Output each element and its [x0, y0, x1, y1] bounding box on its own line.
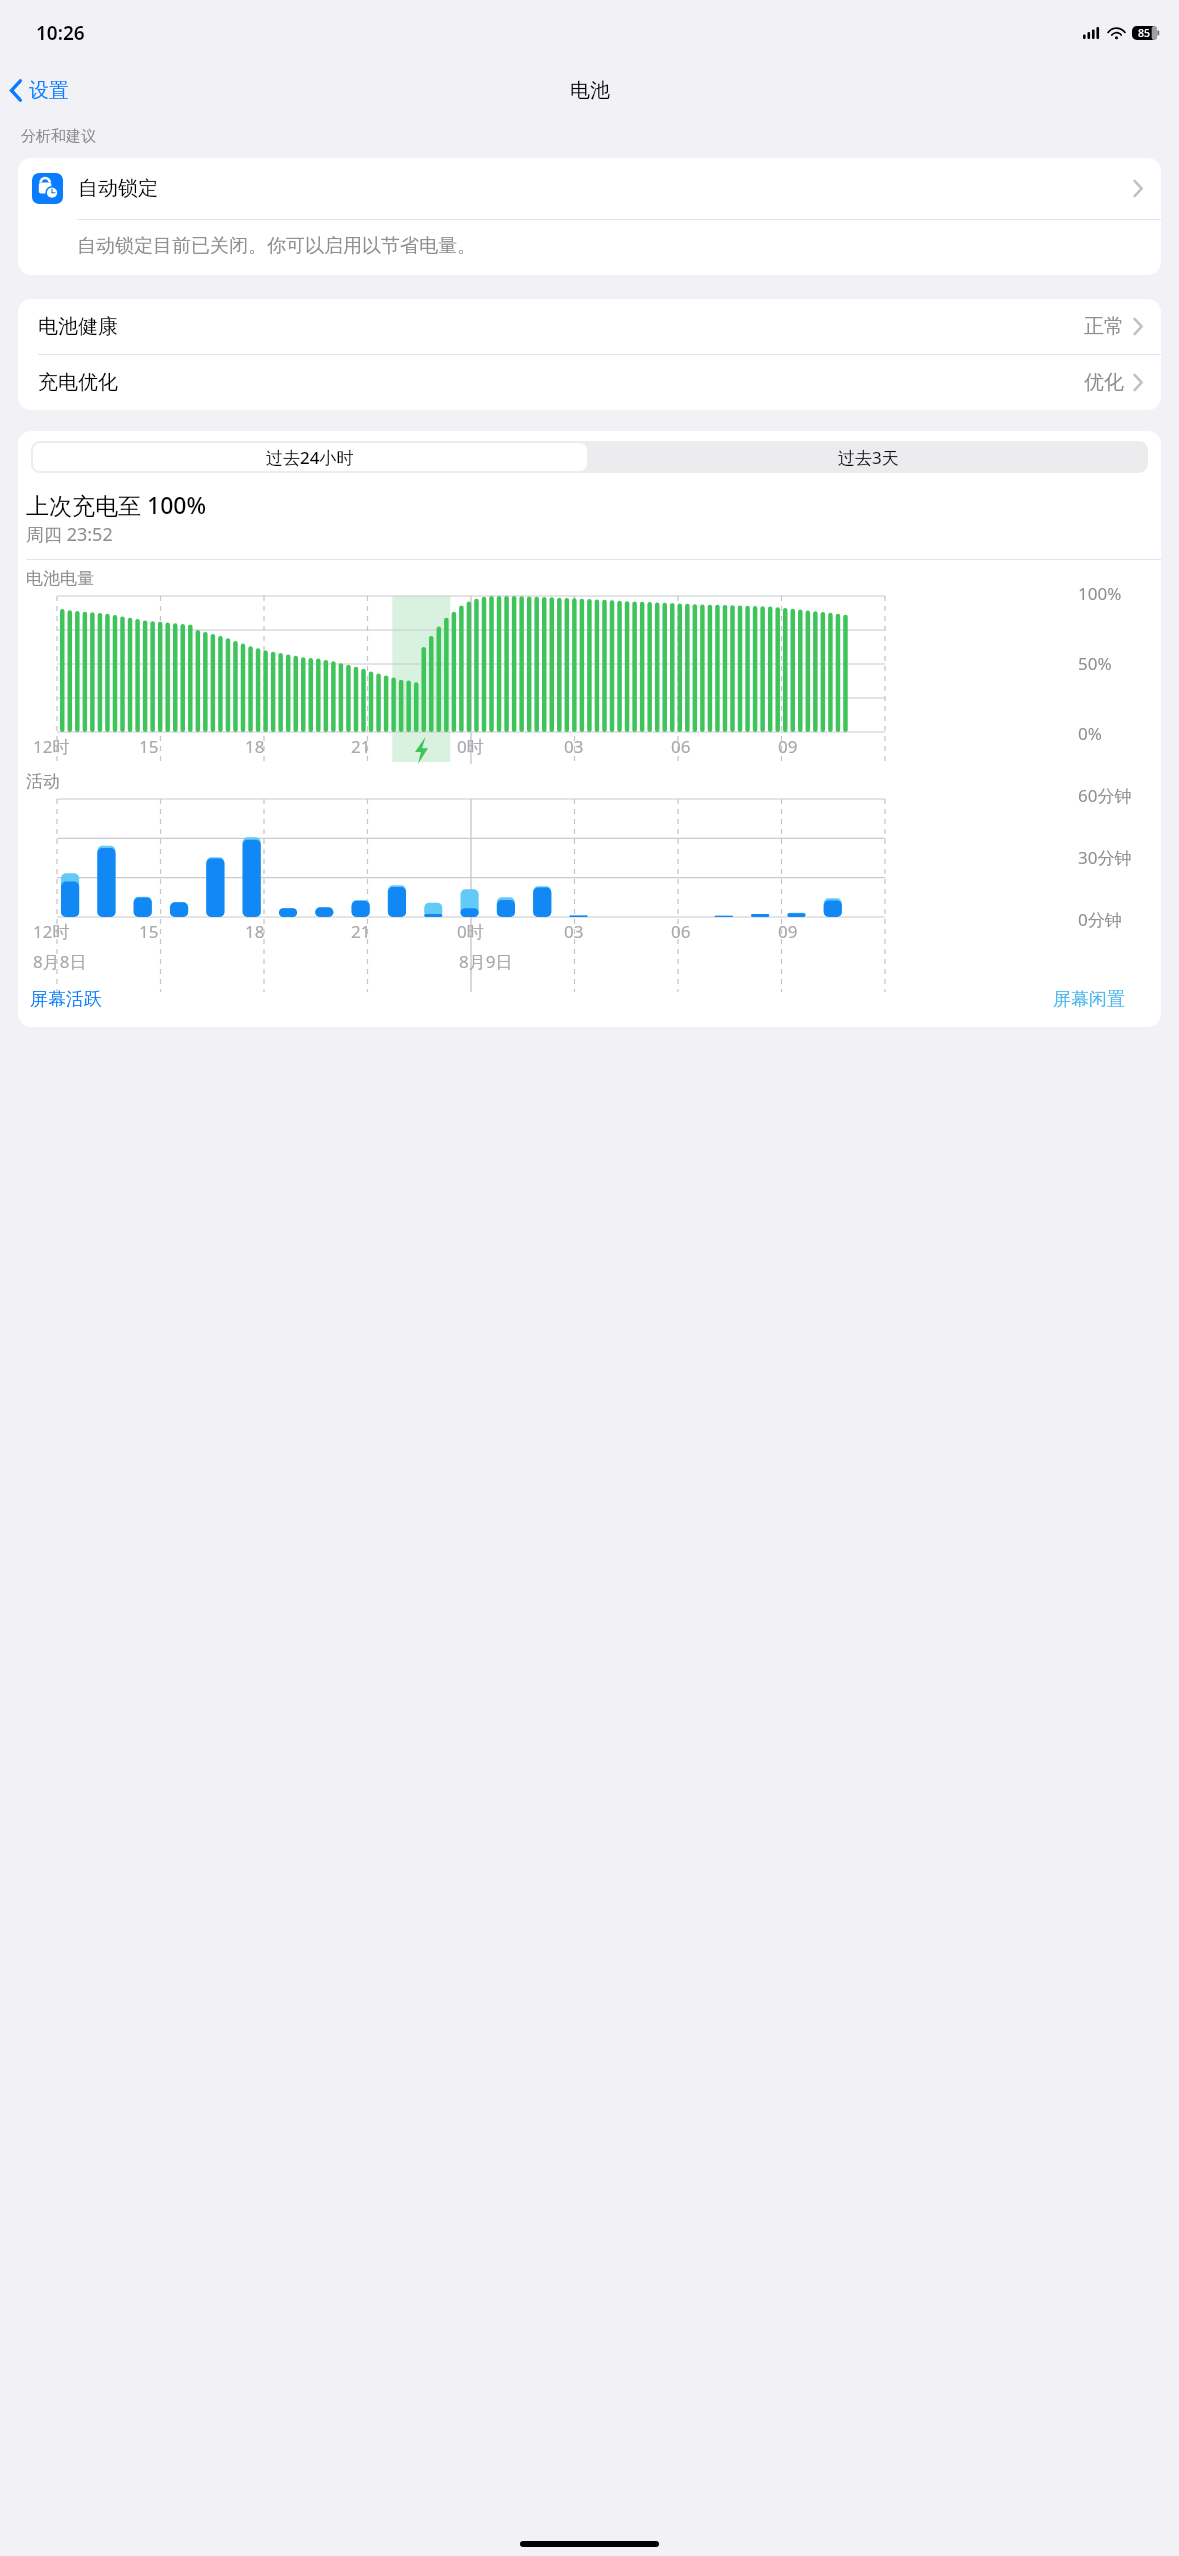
staticText: 正常 — [1084, 314, 1124, 339]
staticText: 0% — [1078, 722, 1102, 745]
staticText: 21 — [351, 920, 371, 943]
staticText: 充电优化 — [38, 370, 118, 395]
staticText: 21 — [351, 735, 371, 758]
staticText: 03 — [564, 735, 584, 758]
staticText: 06 — [671, 920, 691, 943]
staticText: 03 — [564, 920, 584, 943]
staticText: 电池电量 — [26, 568, 94, 589]
staticText: 屏幕活跃 — [30, 988, 102, 1011]
staticText: 18 — [245, 920, 265, 943]
button[interactable]: 设置 — [0, 72, 81, 109]
staticText: 8月8日 — [33, 950, 87, 973]
staticText: 过去3天 — [838, 446, 899, 469]
button[interactable]: 自动锁定 — [18, 158, 1161, 219]
staticText: 自动锁定目前已关闭。你可以启用以节省电量。 — [77, 234, 476, 258]
staticText: 活动 — [26, 771, 60, 792]
staticText: 屏幕闲置 — [1053, 988, 1125, 1011]
staticText: 电池健康 — [38, 314, 118, 339]
staticText: 50% — [1078, 652, 1112, 675]
staticText: 15 — [139, 920, 159, 943]
staticText: 过去24小时 — [266, 446, 354, 469]
staticText: 12时 — [33, 920, 70, 943]
button[interactable]: 充电优化 — [18, 355, 1161, 410]
staticText: 10:26 — [36, 20, 85, 46]
staticText: 18 — [245, 735, 265, 758]
staticText: 设置 — [29, 78, 69, 103]
staticText: 60分钟 — [1078, 784, 1132, 807]
staticText: 100% — [1078, 582, 1122, 605]
staticText: 电池 — [570, 78, 610, 103]
staticText: 85 — [1138, 26, 1151, 40]
staticText: 12时 — [33, 735, 70, 758]
staticText: 0时 — [457, 735, 484, 758]
staticText: 15 — [139, 735, 159, 758]
staticText: 09 — [778, 920, 798, 943]
staticText: 30分钟 — [1078, 846, 1132, 869]
staticText: 自动锁定 — [78, 176, 158, 201]
button[interactable]: 电池健康 — [18, 299, 1161, 354]
staticText: 8月9日 — [459, 950, 513, 973]
staticText: 分析和建议 — [21, 127, 96, 146]
staticText: 优化 — [1084, 370, 1124, 395]
button[interactable]: 过去3天 — [589, 441, 1148, 473]
staticText: 上次充电至 100% — [26, 489, 207, 520]
staticText: 06 — [671, 735, 691, 758]
staticText: 09 — [778, 735, 798, 758]
staticText: 0分钟 — [1078, 908, 1122, 931]
button[interactable]: 过去24小时 — [33, 443, 587, 471]
staticText: 0时 — [457, 920, 484, 943]
staticText: 周四 23:52 — [26, 522, 113, 547]
